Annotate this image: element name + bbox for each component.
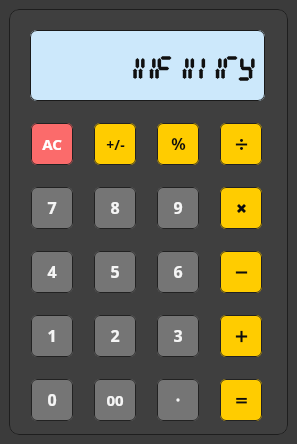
staticText: 9 [173,197,183,219]
button[interactable]: 8 [94,187,136,229]
button[interactable]: 6 [157,251,199,293]
staticText: 3 [173,325,183,347]
staticText: 8 [110,197,120,219]
button[interactable]: 5 [94,251,136,293]
button[interactable]: 1 [31,315,73,357]
button[interactable]: 00 [94,379,136,421]
button[interactable]: Divide [220,123,262,165]
staticText: 1 [47,325,57,347]
staticText: 6 [173,261,183,283]
staticText: 4 [47,261,57,283]
button[interactable]: Equals [220,379,262,421]
staticText: 2 [110,325,120,347]
staticText: % [171,133,186,155]
button[interactable]: % [157,123,199,165]
button[interactable]: Decimal point [157,379,199,421]
button[interactable]: AC [31,123,73,165]
button[interactable]: +/- [94,123,136,165]
staticText: 5 [110,261,120,283]
button[interactable]: 2 [94,315,136,357]
staticText: 0 [47,389,57,411]
staticText: AC [42,134,62,154]
staticText: 7 [47,197,57,219]
button[interactable]: Multiply [220,187,262,229]
staticText: 00 [106,390,124,410]
button[interactable]: 0 [31,379,73,421]
button[interactable]: Plus [220,315,262,357]
button[interactable]: 9 [157,187,199,229]
button[interactable]: 3 [157,315,199,357]
button[interactable]: Minus [220,251,262,293]
button[interactable]: 4 [31,251,73,293]
staticText: +/- [106,135,125,154]
button[interactable]: 7 [31,187,73,229]
